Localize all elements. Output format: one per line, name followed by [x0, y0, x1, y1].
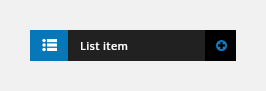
button[interactable]: List: [30, 30, 68, 61]
staticText: List item: [80, 38, 129, 53]
button[interactable]: List item: [68, 30, 205, 61]
button[interactable]: Add: [205, 30, 236, 61]
